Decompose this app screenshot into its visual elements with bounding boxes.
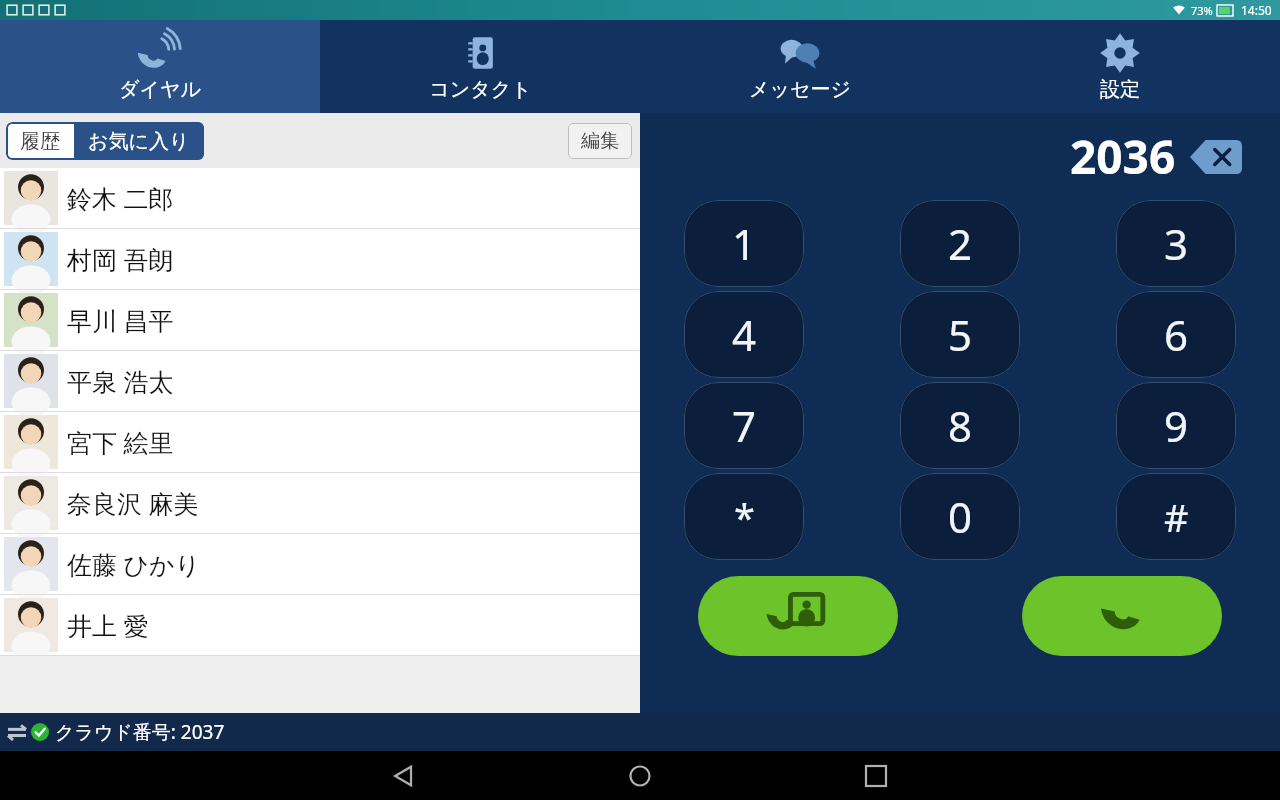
button[interactable]: お気に入り [88,122,190,160]
staticText: 3 [1164,215,1189,272]
staticText: 0 [948,488,973,545]
button[interactable]: 6 [1116,291,1236,378]
staticText: ダイヤル [119,77,201,102]
staticText: 2 [948,215,973,272]
button[interactable]: Call [1022,576,1222,656]
button[interactable]: Backspace [1190,140,1242,174]
button[interactable]: 0 [900,473,1020,560]
button[interactable]: メッセージ [640,20,960,113]
staticText: コンタクト [429,77,532,102]
staticText: 平泉 浩太 [67,364,174,398]
button[interactable]: ダイヤル [0,20,320,113]
staticText: メッセージ [749,77,851,102]
button[interactable]: 村岡 吾朗 [0,229,640,290]
staticText: 9 [1164,397,1189,454]
button[interactable]: # [1116,473,1236,560]
staticText: 14:50 [1241,2,1272,18]
staticText: 1 [732,215,757,272]
button[interactable]: 1 [684,200,804,287]
staticText: 鈴木 二郎 [67,181,174,215]
button[interactable]: 鈴木 二郎 [0,168,640,229]
staticText: 7 [732,397,757,454]
button[interactable]: 7 [684,382,804,469]
staticText: 4 [732,306,757,363]
staticText: 早川 昌平 [67,303,174,337]
staticText: 2036 [1070,125,1176,188]
staticText: 奈良沢 麻美 [67,486,199,520]
staticText: 履歴 [20,129,60,154]
button[interactable]: 設定 [960,20,1280,113]
staticText: 6 [1164,306,1189,363]
button[interactable]: 3 [1116,200,1236,287]
staticText: 宮下 絵里 [67,425,174,459]
button[interactable]: Home [616,752,664,800]
button[interactable]: 履歴 [20,122,60,160]
button[interactable]: * [684,473,804,560]
button[interactable]: 井上 愛 [0,595,640,656]
button[interactable]: 5 [900,291,1020,378]
button[interactable]: 奈良沢 麻美 [0,473,640,534]
button[interactable]: 4 [684,291,804,378]
staticText: 村岡 吾朗 [67,242,174,276]
button[interactable]: 早川 昌平 [0,290,640,351]
button[interactable]: コンタクト [320,20,640,113]
button[interactable]: Recents [852,752,900,800]
button[interactable]: Video call [698,576,898,656]
staticText: お気に入り [88,129,190,154]
staticText: 73% [1191,3,1213,18]
button[interactable]: 宮下 絵里 [0,412,640,473]
button[interactable]: 佐藤 ひかり [0,534,640,595]
button[interactable]: 平泉 浩太 [0,351,640,412]
button[interactable]: 編集 [568,123,632,159]
staticText: 設定 [1100,77,1140,102]
staticText: 8 [948,397,973,454]
staticText: * [734,491,755,543]
staticText: 佐藤 ひかり [67,547,201,581]
button[interactable]: 2 [900,200,1020,287]
staticText: 井上 愛 [67,608,149,642]
staticText: # [1164,491,1189,543]
staticText: 編集 [581,129,619,153]
button[interactable]: 9 [1116,382,1236,469]
button[interactable]: Back [380,752,428,800]
button[interactable]: 8 [900,382,1020,469]
staticText: クラウド番号: 2037 [55,719,225,745]
staticText: 5 [948,306,973,363]
